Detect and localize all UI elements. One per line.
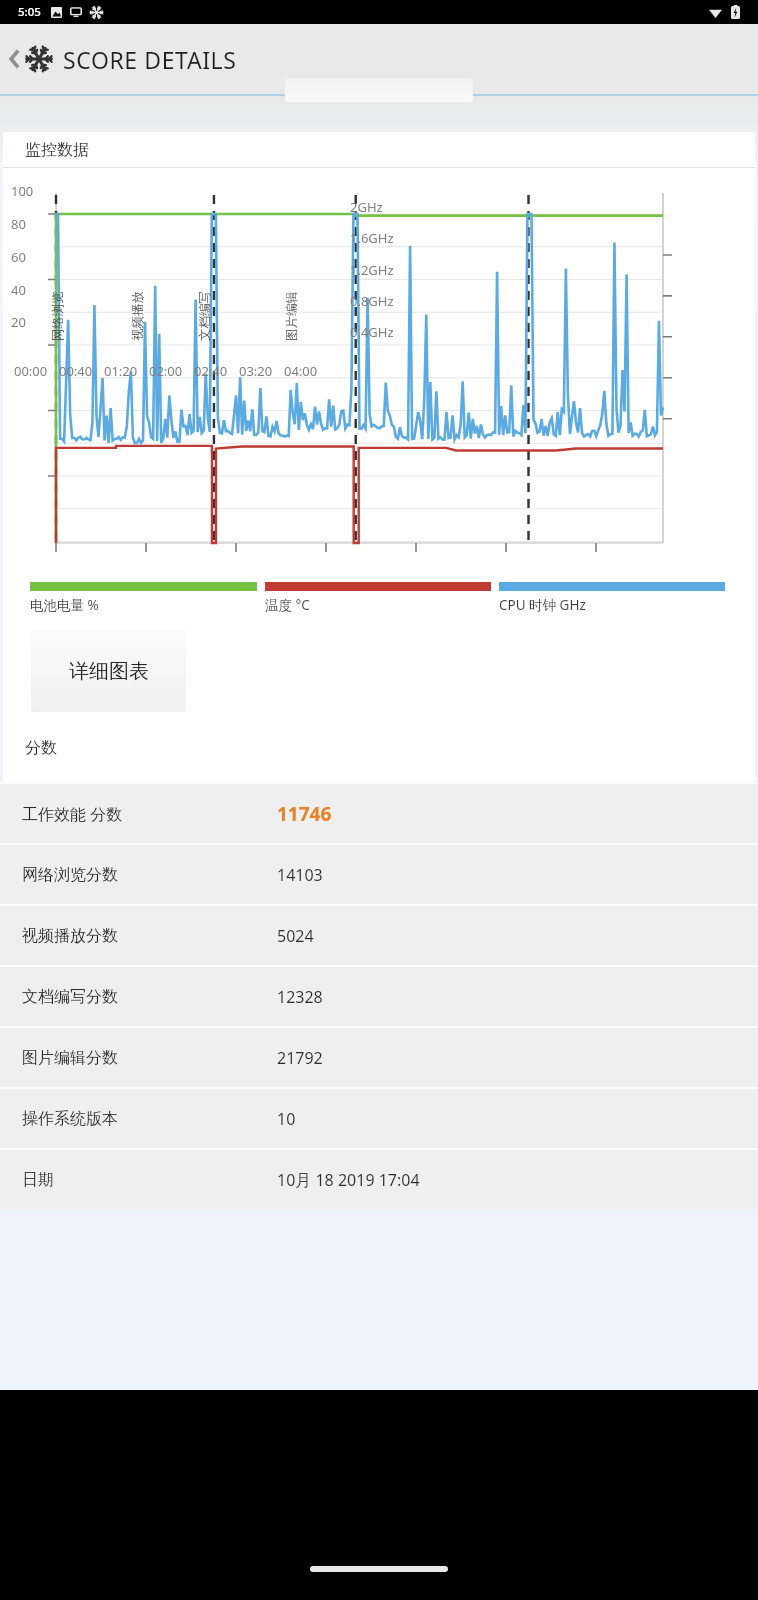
button[interactable]: 网络浏览分数 bbox=[0, 845, 758, 904]
staticText: 21792 bbox=[277, 1047, 323, 1069]
staticText: 04:00 bbox=[284, 362, 318, 380]
staticText: 2GHz bbox=[350, 198, 383, 216]
staticText: 0.8GHz bbox=[350, 292, 394, 310]
staticText: 详细图表 bbox=[69, 659, 149, 684]
staticText: 文档编写 bbox=[197, 291, 213, 341]
staticText: 60 bbox=[11, 248, 26, 266]
staticText: 03:20 bbox=[239, 362, 273, 380]
staticText: 02:00 bbox=[149, 362, 183, 380]
staticText: 00:00 bbox=[14, 362, 48, 380]
button[interactable]: 文档编写分数 bbox=[0, 967, 758, 1026]
button[interactable]: 图片编辑分数 bbox=[0, 1028, 758, 1087]
staticText: 02:40 bbox=[194, 362, 228, 380]
staticText: 工作效能 分数 bbox=[22, 803, 277, 825]
staticText: 温度 °C bbox=[265, 596, 310, 614]
button[interactable]: 日期 bbox=[0, 1150, 758, 1209]
staticText: 1.6GHz bbox=[350, 229, 394, 247]
staticText: 20 bbox=[11, 313, 26, 331]
staticText: 分数 bbox=[25, 738, 57, 758]
staticText: 5:05 bbox=[18, 4, 41, 20]
staticText: 网络浏览分数 bbox=[22, 865, 277, 885]
staticText: 文档编写分数 bbox=[22, 987, 277, 1007]
staticText: 01:20 bbox=[104, 362, 138, 380]
staticText: 10 bbox=[277, 1108, 296, 1130]
staticText: 00:40 bbox=[59, 362, 93, 380]
staticText: SCORE DETAILS bbox=[63, 44, 237, 75]
staticText: 12328 bbox=[277, 986, 323, 1008]
staticText: 40 bbox=[11, 281, 26, 299]
button[interactable]: Back bbox=[8, 46, 22, 72]
staticText: CPU 时钟 GHz bbox=[499, 596, 586, 614]
staticText: 80 bbox=[11, 215, 26, 233]
staticText: 0.4GHz bbox=[350, 323, 394, 341]
staticText: 14103 bbox=[277, 864, 323, 886]
button[interactable]: 详细图表 bbox=[31, 630, 186, 712]
button[interactable]: 工作效能 分数 bbox=[0, 784, 758, 843]
staticText: 11746 bbox=[277, 801, 332, 827]
staticText: 监控数据 bbox=[25, 140, 89, 160]
staticText: 网络浏览 bbox=[50, 291, 66, 341]
staticText: 100 bbox=[11, 182, 34, 200]
staticText: 操作系统版本 bbox=[22, 1109, 277, 1129]
staticText: 1.2GHz bbox=[350, 261, 394, 279]
staticText: 10月 18 2019 17:04 bbox=[277, 1169, 420, 1191]
staticText: 5024 bbox=[277, 925, 314, 947]
button[interactable]: 视频播放分数 bbox=[0, 906, 758, 965]
staticText: 视频播放分数 bbox=[22, 926, 277, 946]
staticText: 视频播放 bbox=[130, 291, 146, 341]
staticText: 日期 bbox=[22, 1170, 277, 1190]
staticText: 图片编辑分数 bbox=[22, 1048, 277, 1068]
staticText: 图片编辑 bbox=[284, 291, 300, 341]
button[interactable]: 操作系统版本 bbox=[0, 1089, 758, 1148]
staticText: 电池电量 % bbox=[30, 596, 99, 614]
